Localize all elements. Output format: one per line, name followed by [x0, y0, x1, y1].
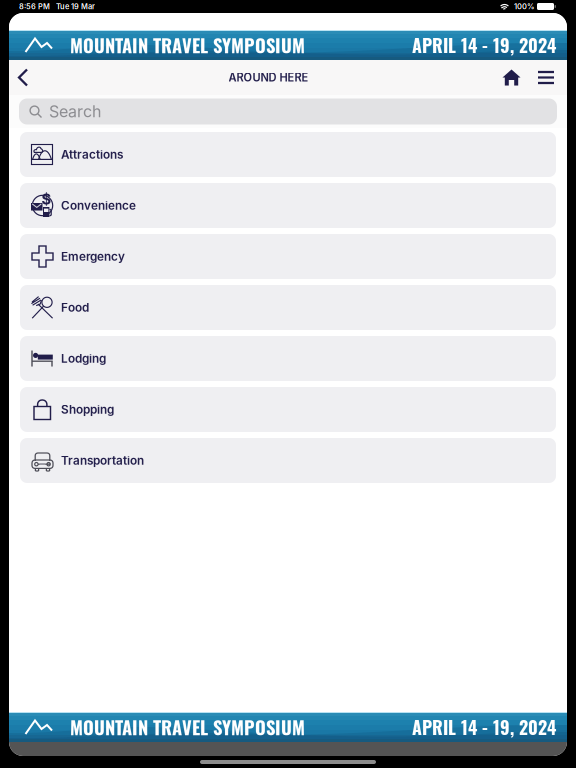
button[interactable]: Home [496, 60, 527, 95]
staticText: APRIL 14 - 19, 2024 [412, 714, 556, 740]
button[interactable]: Lodging [9, 336, 567, 381]
button[interactable]: Attractions [9, 132, 567, 177]
staticText: Food [61, 300, 89, 315]
staticText: AROUND HERE [228, 71, 308, 84]
button[interactable]: Food [9, 285, 567, 330]
staticText: APRIL 14 - 19, 2024 [412, 32, 556, 58]
staticText: 100% [514, 2, 534, 11]
staticText: Emergency [61, 249, 125, 264]
staticText: 8:56 PM [19, 2, 50, 11]
button[interactable]: Emergency [9, 234, 567, 279]
button[interactable]: Menu [527, 60, 567, 95]
staticText: MOUNTAIN TRAVEL SYMPOSIUM [70, 713, 305, 741]
staticText: Lodging [61, 351, 106, 366]
button[interactable]: Shopping [9, 387, 567, 432]
staticText: MOUNTAIN TRAVEL SYMPOSIUM [70, 31, 305, 59]
staticText: Convenience [61, 198, 136, 213]
staticText: Tue 19 Mar [56, 2, 95, 11]
staticText: $ [41, 190, 51, 208]
staticText: Transportation [61, 453, 144, 468]
button[interactable]: Transportation [9, 438, 567, 483]
staticText: Search [49, 102, 101, 121]
button[interactable]: Search [9, 98, 567, 124]
staticText: Shopping [61, 402, 114, 417]
staticText: Attractions [61, 147, 123, 162]
button[interactable]: Back [9, 60, 41, 95]
button[interactable]: $ [9, 183, 567, 228]
